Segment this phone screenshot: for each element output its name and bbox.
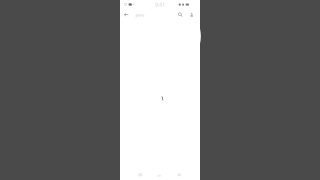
button[interactable]: Home [133, 167, 148, 180]
button[interactable]: Search [175, 9, 185, 20]
button[interactable]: Profile [172, 167, 187, 180]
staticText: plans [135, 12, 144, 18]
button[interactable]: Account [187, 9, 197, 20]
button[interactable]: Back [121, 9, 132, 20]
staticText: 9:41 [155, 1, 165, 8]
